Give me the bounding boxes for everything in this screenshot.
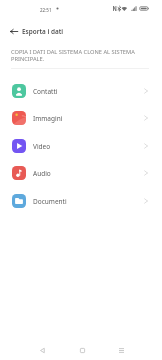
staticText: Video <box>33 142 144 151</box>
button[interactable]: Indietro <box>3 20 25 42</box>
button[interactable]: Indietro <box>32 340 52 360</box>
button[interactable]: Audio <box>0 159 162 187</box>
button[interactable]: Recenti <box>111 340 131 360</box>
button[interactable]: Documenti <box>0 187 162 215</box>
staticText: Documenti <box>33 197 144 206</box>
staticText: Audio <box>33 169 144 178</box>
button[interactable]: Contatti <box>0 77 162 105</box>
staticText: Esporta i dati <box>22 27 64 36</box>
button[interactable]: Home <box>72 340 92 360</box>
staticText: 22:51 <box>40 7 52 13</box>
staticText: COPIA I DATI DAL SISTEMA CLONE AL SISTEM… <box>11 48 151 63</box>
staticText: Contatti <box>33 87 144 96</box>
button[interactable]: Video <box>0 132 162 160</box>
staticText: Immagini <box>33 114 144 123</box>
button[interactable]: Immagini <box>0 104 162 132</box>
